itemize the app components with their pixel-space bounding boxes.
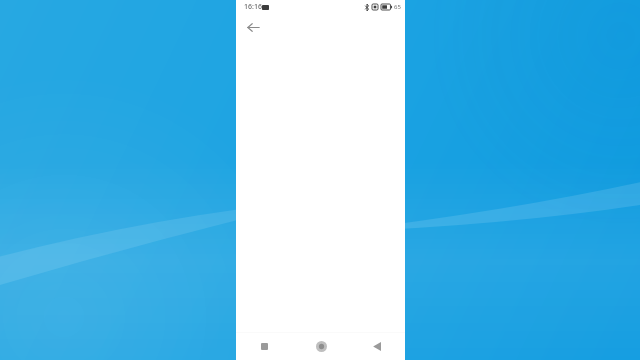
staticText: 16:16 (244, 2, 262, 12)
button[interactable]: Recents (236, 333, 293, 360)
button[interactable]: Home (293, 333, 349, 360)
button[interactable]: Back (242, 16, 264, 38)
button[interactable]: Back (349, 333, 405, 360)
staticText: 65 (394, 3, 401, 11)
